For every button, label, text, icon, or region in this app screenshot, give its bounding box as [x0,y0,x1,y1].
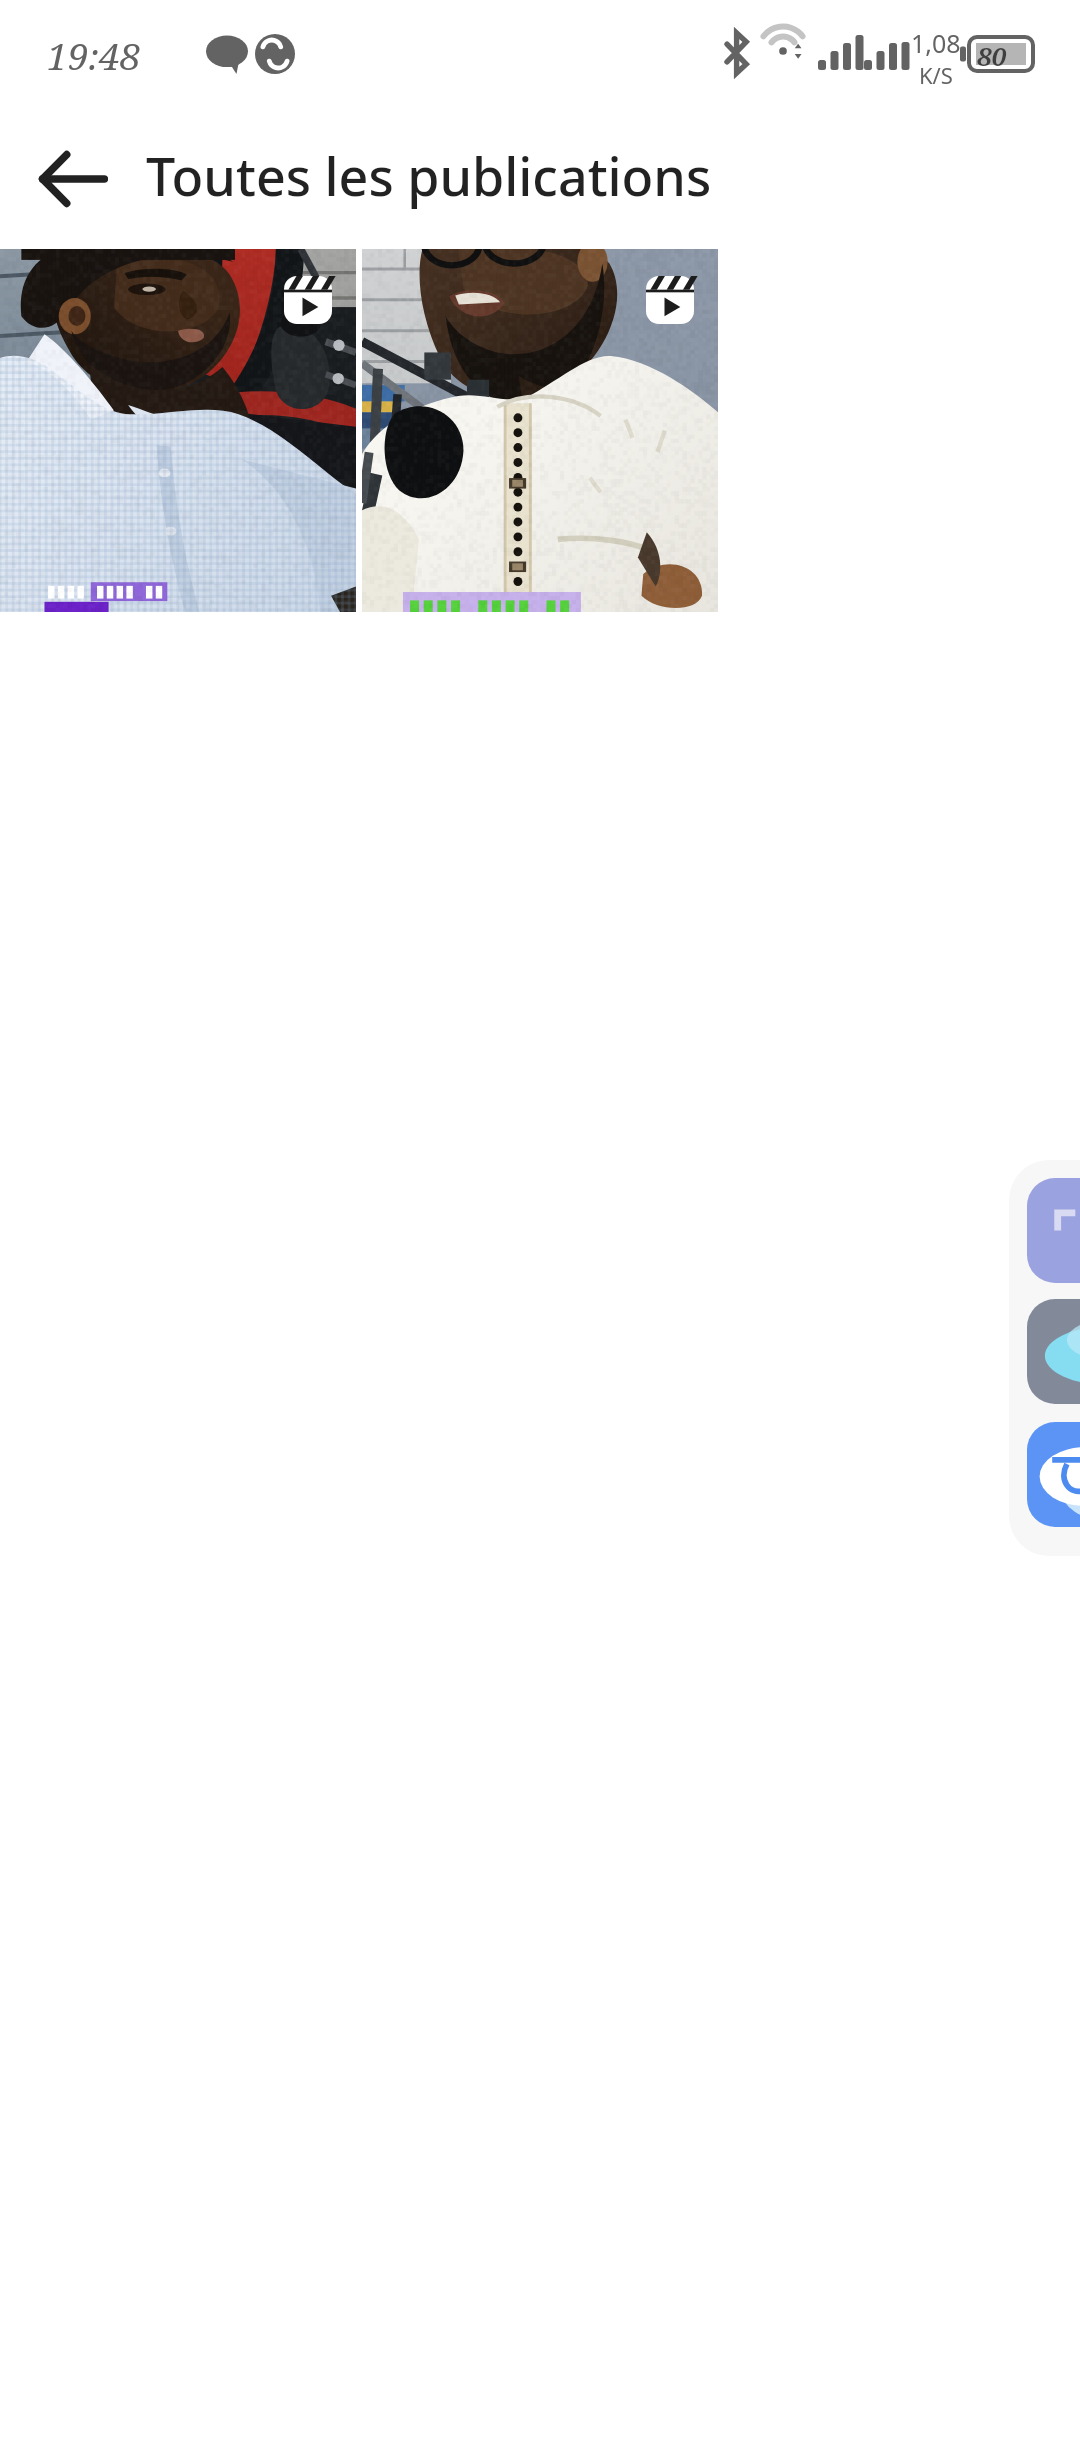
staticText: K/S [919,60,953,90]
other: Reel [646,276,694,324]
staticText: Toutes les publications [146,140,712,211]
button[interactable]: Screenshot tool [1027,1178,1080,1283]
button[interactable]: Translate [1027,1422,1080,1527]
other: Reel [284,276,332,324]
button[interactable]: Reel post 2 [362,249,718,612]
staticText: 19:48 [47,30,141,80]
staticText: 1,08 [911,26,961,60]
button[interactable]: Sound assistant [1027,1299,1080,1404]
staticText: 80 [977,38,1007,73]
button[interactable]: Reel post 1 [0,249,356,612]
button[interactable]: Back [24,131,120,227]
